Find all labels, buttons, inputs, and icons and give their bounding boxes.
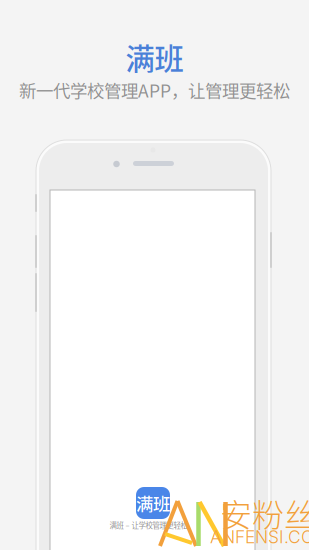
- staticText: 满班: [136, 490, 170, 516]
- staticText: 满班: [125, 36, 183, 78]
- staticText: ANFENSI.COM: [210, 526, 309, 547]
- staticText: 满班 – 让学校管理更轻松: [109, 520, 187, 530]
- staticText: 安粉丝: [220, 490, 309, 536]
- staticText: 新一代学校管理APP，让管理更轻松: [19, 77, 290, 103]
